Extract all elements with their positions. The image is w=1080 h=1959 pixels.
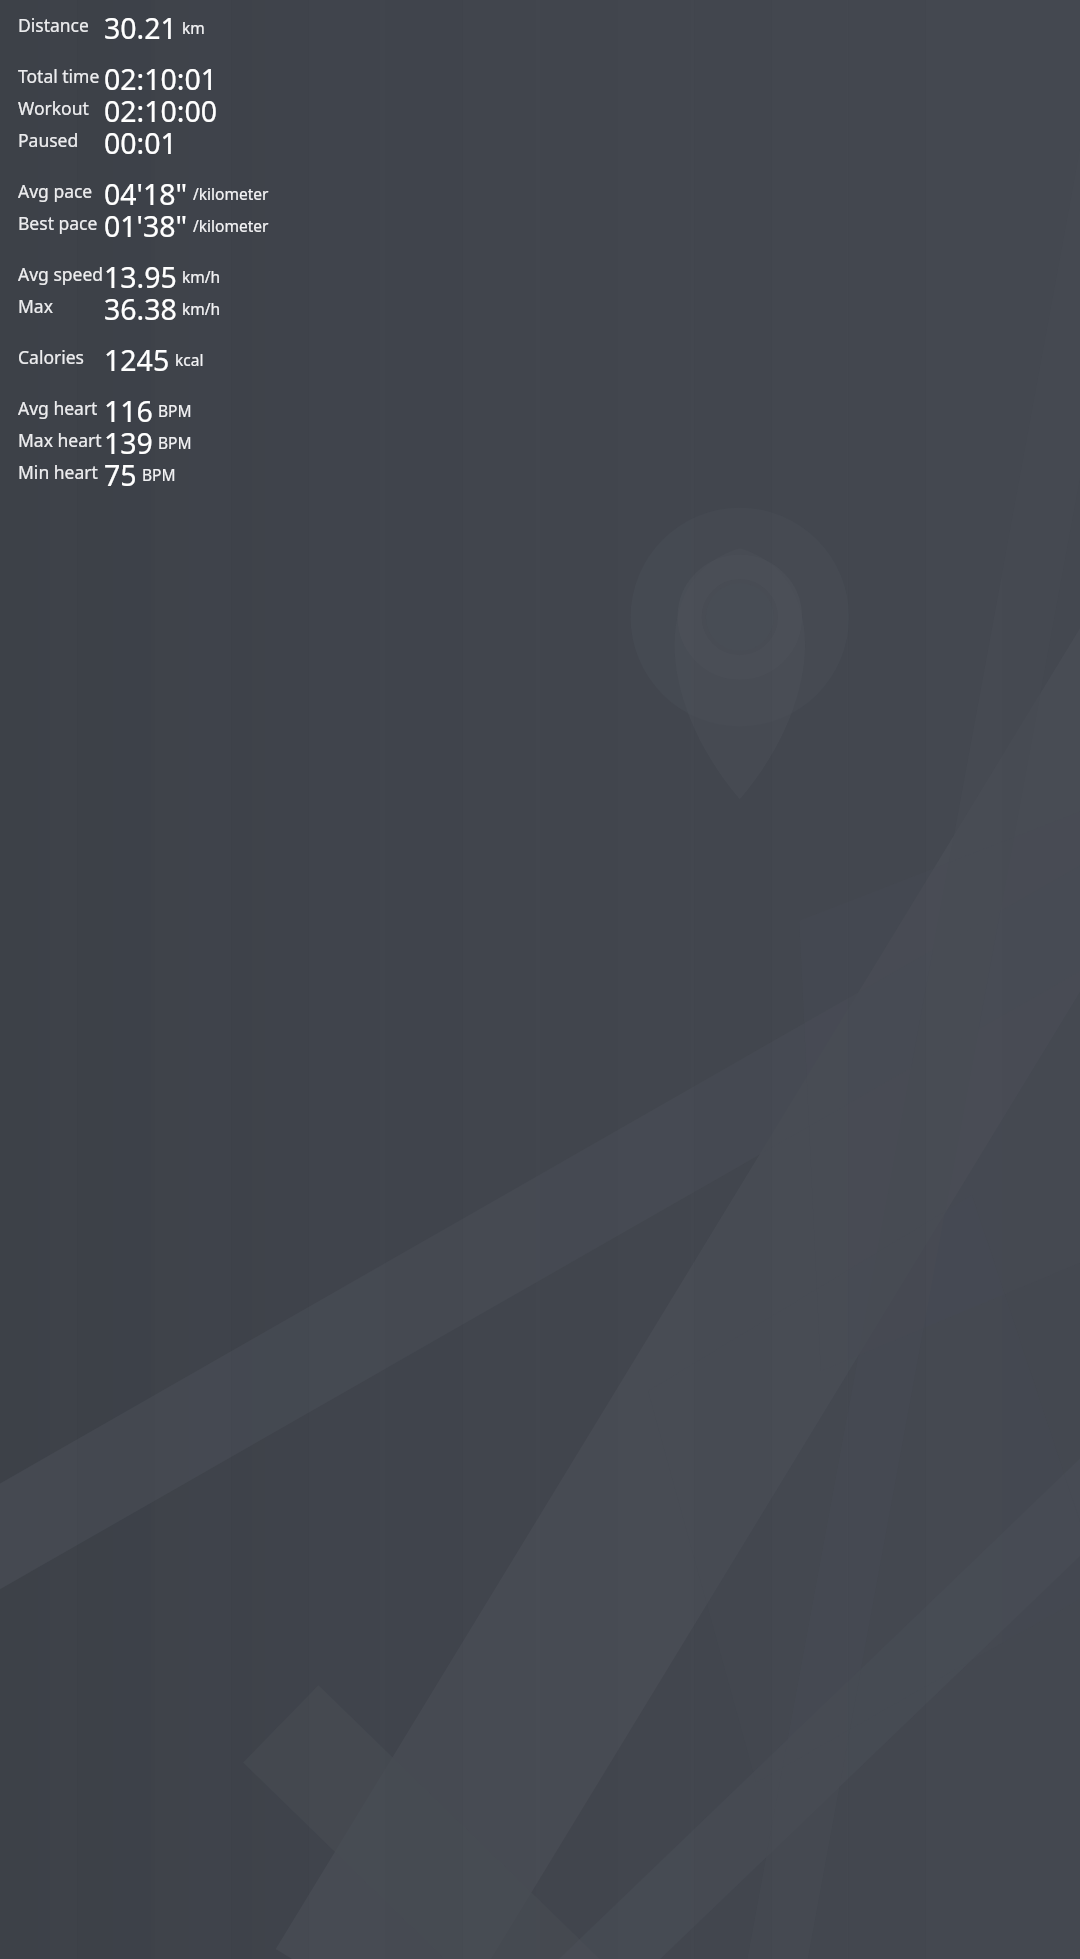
- staticText: Avg pace: [18, 179, 93, 203]
- staticText: Best pace: [18, 211, 98, 235]
- staticText: 139: [104, 424, 153, 456]
- staticText: 04'18": [104, 175, 188, 207]
- staticText: Avg heart rate: [18, 396, 104, 420]
- staticText: Workout time: [18, 96, 104, 120]
- button[interactable]: Total time: [0, 60, 1080, 92]
- button[interactable]: Avg pace: [0, 175, 1080, 207]
- staticText: 30.21: [104, 9, 177, 41]
- staticText: Total time: [18, 64, 100, 88]
- staticText: 01'38": [104, 207, 188, 239]
- staticText: 02:10:00: [104, 92, 218, 124]
- staticText: 13.95: [104, 258, 177, 290]
- staticText: Calories: [18, 345, 84, 369]
- staticText: 75: [104, 456, 137, 488]
- staticText: Max heart rate: [18, 428, 104, 452]
- staticText: kcal: [175, 349, 204, 370]
- staticText: 36.38: [104, 290, 177, 322]
- button[interactable]: Paused time: [0, 124, 1080, 156]
- staticText: Distance: [18, 13, 89, 37]
- staticText: BPM: [158, 432, 192, 453]
- button[interactable]: Min heart rate: [0, 456, 1080, 488]
- staticText: Min heart rate: [18, 460, 104, 484]
- staticText: Max speed: [18, 294, 104, 318]
- staticText: /kilometer: [193, 215, 269, 236]
- staticText: /kilometer: [193, 183, 269, 204]
- button[interactable]: Calories: [0, 341, 1080, 373]
- staticText: 00:01: [104, 124, 177, 156]
- button[interactable]: Avg speed: [0, 258, 1080, 290]
- staticText: Paused time: [18, 128, 104, 152]
- staticText: 116: [104, 392, 153, 424]
- button[interactable]: Workout time: [0, 92, 1080, 124]
- button[interactable]: Max heart rate: [0, 424, 1080, 456]
- staticText: BPM: [158, 400, 192, 421]
- staticText: km/h: [182, 266, 221, 287]
- staticText: km: [182, 17, 205, 38]
- staticText: 02:10:01: [104, 60, 218, 92]
- button[interactable]: Avg heart rate: [0, 392, 1080, 424]
- button[interactable]: Best pace: [0, 207, 1080, 239]
- button[interactable]: Max speed: [0, 290, 1080, 322]
- button[interactable]: Distance: [0, 9, 1080, 41]
- staticText: BPM: [142, 464, 176, 485]
- staticText: 1245: [104, 341, 170, 373]
- staticText: km/h: [182, 298, 221, 319]
- staticText: Avg speed: [18, 262, 104, 286]
